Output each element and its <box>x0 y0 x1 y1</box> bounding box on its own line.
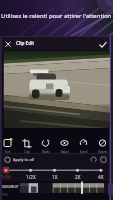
button[interactable] <box>0 165 13 179</box>
button[interactable] <box>24 165 38 179</box>
staticText: Trim <box>5 150 11 154</box>
staticText: Crop <box>24 150 30 154</box>
staticText: Volume <box>98 150 108 154</box>
button[interactable] <box>95 137 111 152</box>
button[interactable] <box>38 137 54 152</box>
button[interactable] <box>2 38 14 50</box>
staticText: Clip Edit <box>16 40 35 46</box>
button[interactable] <box>89 155 98 164</box>
button[interactable] <box>99 155 108 164</box>
staticText: 1/4X <box>1 174 11 180</box>
staticText: Speed <box>80 150 88 154</box>
button[interactable] <box>0 137 16 152</box>
staticText: Utilisez le ralenti pour attirer l'atten… <box>1 12 112 20</box>
button[interactable] <box>76 137 92 152</box>
staticText: 1/2X <box>26 174 36 180</box>
button[interactable] <box>48 165 62 179</box>
button[interactable] <box>94 165 108 179</box>
staticText: 1X <box>52 174 58 180</box>
button[interactable] <box>71 165 85 179</box>
staticText: 4X <box>98 174 104 180</box>
button[interactable] <box>97 38 110 50</box>
staticText: 00:02/00:07 <box>2 185 19 189</box>
button[interactable] <box>2 154 44 165</box>
button[interactable] <box>57 137 73 152</box>
staticText: Apply to all <box>13 157 34 162</box>
staticText: Rotate <box>42 150 50 154</box>
staticText: 2X <box>75 174 81 180</box>
staticText: 0:00 <box>2 193 8 197</box>
button[interactable] <box>19 137 35 152</box>
staticText: Adjust <box>61 150 69 154</box>
